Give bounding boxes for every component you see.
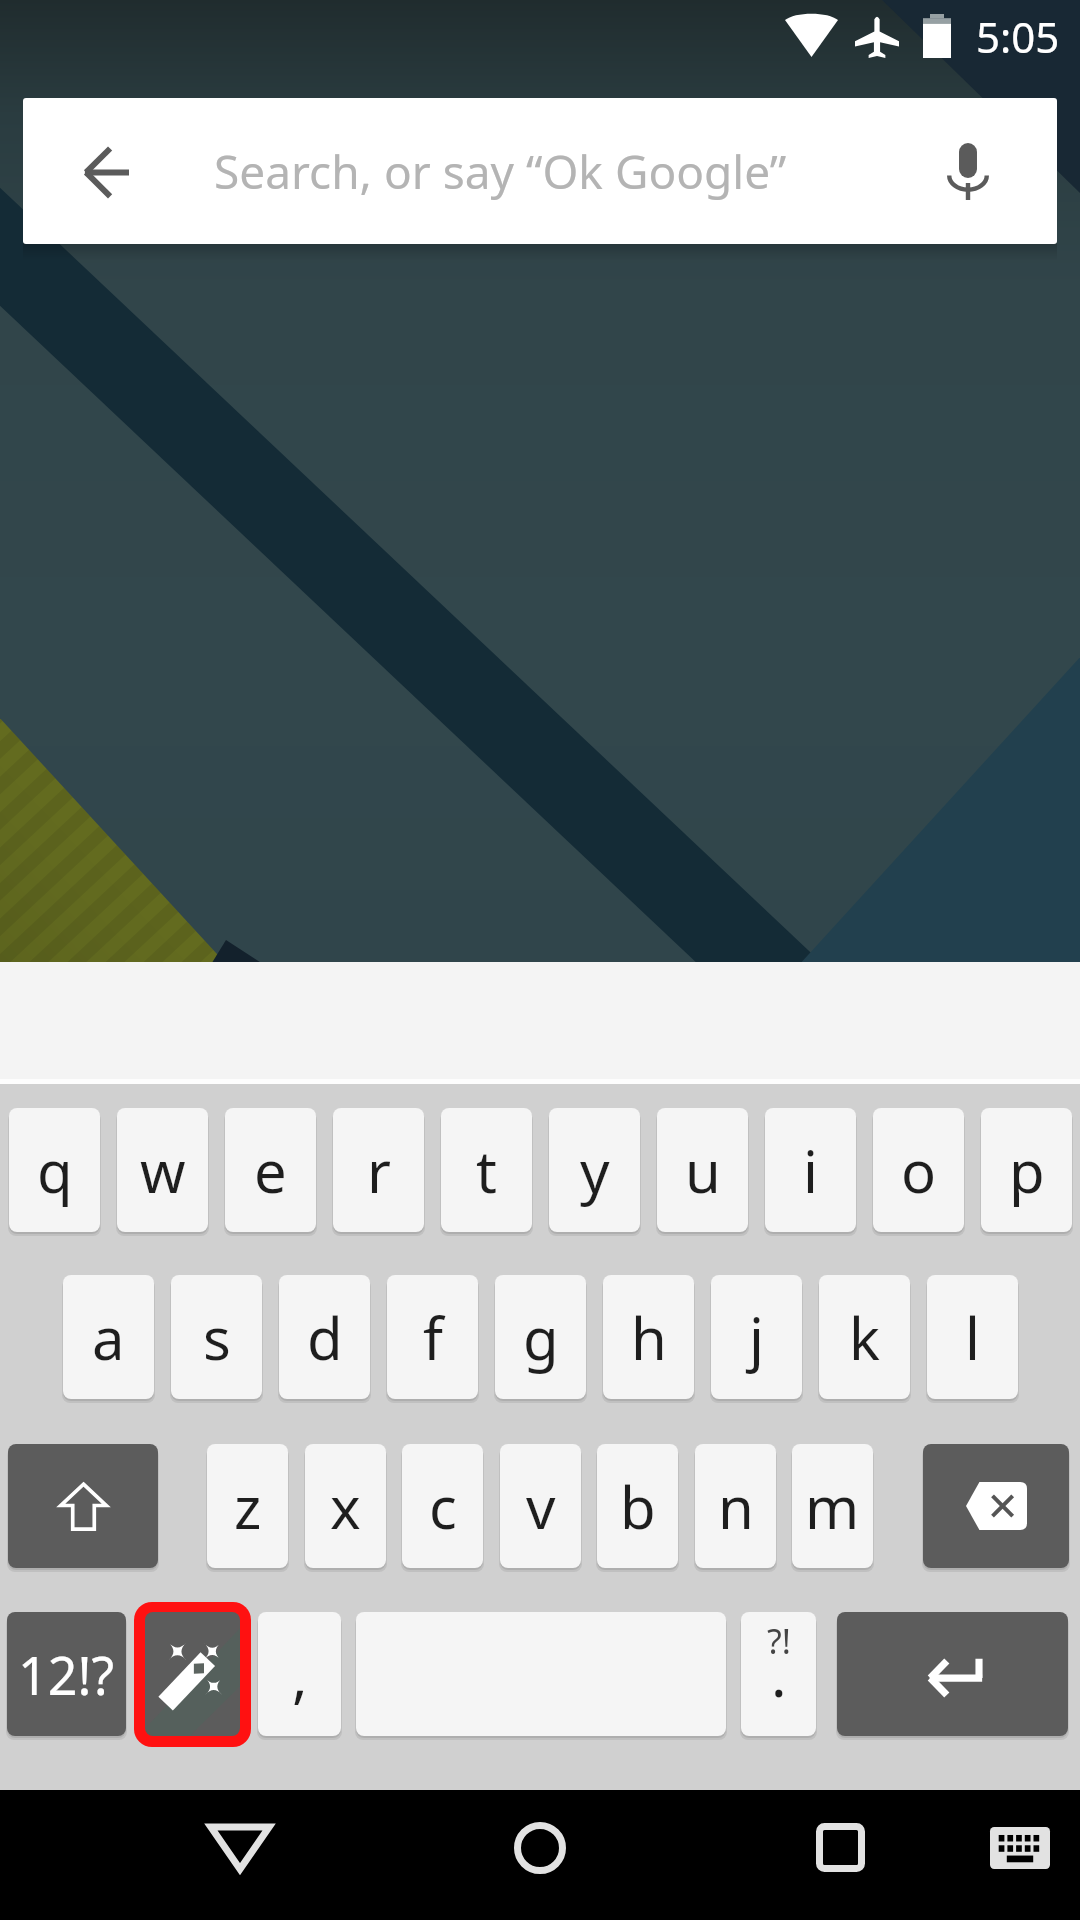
button[interactable]: k bbox=[819, 1275, 910, 1399]
button[interactable]: Back bbox=[58, 123, 154, 219]
button[interactable]: f bbox=[387, 1275, 478, 1399]
button[interactable]: d bbox=[279, 1275, 370, 1399]
button[interactable]: Magic bbox=[145, 1612, 240, 1736]
staticText: m bbox=[805, 1467, 860, 1546]
staticText: a bbox=[92, 1298, 125, 1377]
button[interactable]: z bbox=[207, 1444, 288, 1568]
staticText: r bbox=[367, 1131, 391, 1210]
button[interactable]: , bbox=[258, 1612, 341, 1736]
staticText: z bbox=[234, 1467, 262, 1546]
button[interactable]: Enter bbox=[837, 1612, 1068, 1736]
button[interactable]: i bbox=[765, 1108, 856, 1232]
button[interactable]: Backspace bbox=[923, 1444, 1069, 1568]
button[interactable]: w bbox=[117, 1108, 208, 1232]
staticText: h bbox=[631, 1298, 667, 1377]
button[interactable]: Shift bbox=[8, 1444, 158, 1568]
staticText: w bbox=[140, 1131, 186, 1210]
button[interactable]: Voice search bbox=[920, 123, 1016, 219]
staticText: c bbox=[429, 1467, 457, 1546]
staticText: x bbox=[330, 1467, 361, 1546]
staticText: t bbox=[476, 1131, 497, 1210]
button[interactable]: r bbox=[333, 1108, 424, 1232]
button[interactable]: n bbox=[695, 1444, 776, 1568]
staticText: s bbox=[203, 1298, 231, 1377]
button[interactable]: v bbox=[500, 1444, 581, 1568]
button[interactable]: . bbox=[741, 1612, 816, 1736]
staticText: 12!? bbox=[18, 1639, 115, 1710]
staticText: Search, or say “Ok Google” bbox=[214, 140, 787, 203]
staticText: 5:05 bbox=[976, 8, 1060, 65]
staticText: l bbox=[965, 1298, 980, 1377]
button[interactable]: l bbox=[927, 1275, 1018, 1399]
staticText: e bbox=[254, 1131, 287, 1210]
button[interactable]: Home bbox=[514, 1822, 566, 1874]
staticText: , bbox=[292, 1635, 308, 1714]
button[interactable]: o bbox=[873, 1108, 964, 1232]
button[interactable]: a bbox=[63, 1275, 154, 1399]
button[interactable]: b bbox=[597, 1444, 678, 1568]
staticText: b bbox=[620, 1467, 656, 1546]
staticText: d bbox=[307, 1298, 343, 1377]
button[interactable]: p bbox=[981, 1108, 1072, 1232]
staticText: . bbox=[771, 1635, 787, 1714]
button[interactable]: Recents bbox=[816, 1823, 865, 1872]
staticText: o bbox=[901, 1131, 937, 1210]
staticText: g bbox=[523, 1298, 559, 1377]
button[interactable]: u bbox=[657, 1108, 748, 1232]
staticText: u bbox=[685, 1131, 721, 1210]
button[interactable]: h bbox=[603, 1275, 694, 1399]
staticText: p bbox=[1009, 1131, 1045, 1210]
staticText: i bbox=[803, 1131, 818, 1210]
staticText: y bbox=[580, 1131, 610, 1210]
button[interactable]: s bbox=[171, 1275, 262, 1399]
button[interactable]: y bbox=[549, 1108, 640, 1232]
staticText: q bbox=[37, 1131, 73, 1210]
button[interactable]: m bbox=[792, 1444, 873, 1568]
button[interactable]: c bbox=[402, 1444, 483, 1568]
button[interactable]: j bbox=[711, 1275, 802, 1399]
button[interactable]: Switch keyboard bbox=[990, 1827, 1050, 1869]
button[interactable]: x bbox=[305, 1444, 386, 1568]
button[interactable]: q bbox=[9, 1108, 100, 1232]
staticText: ?! bbox=[767, 1618, 791, 1664]
staticText: v bbox=[526, 1467, 556, 1546]
button[interactable]: g bbox=[495, 1275, 586, 1399]
button[interactable]: e bbox=[225, 1108, 316, 1232]
staticText: f bbox=[423, 1298, 443, 1377]
button[interactable]: Back bbox=[23, 98, 1057, 244]
staticText: n bbox=[718, 1467, 754, 1546]
button[interactable]: t bbox=[441, 1108, 532, 1232]
staticText: j bbox=[749, 1298, 764, 1377]
button[interactable]: 12!? bbox=[7, 1612, 126, 1736]
button[interactable]: Back bbox=[209, 1824, 271, 1872]
staticText: k bbox=[849, 1298, 880, 1377]
